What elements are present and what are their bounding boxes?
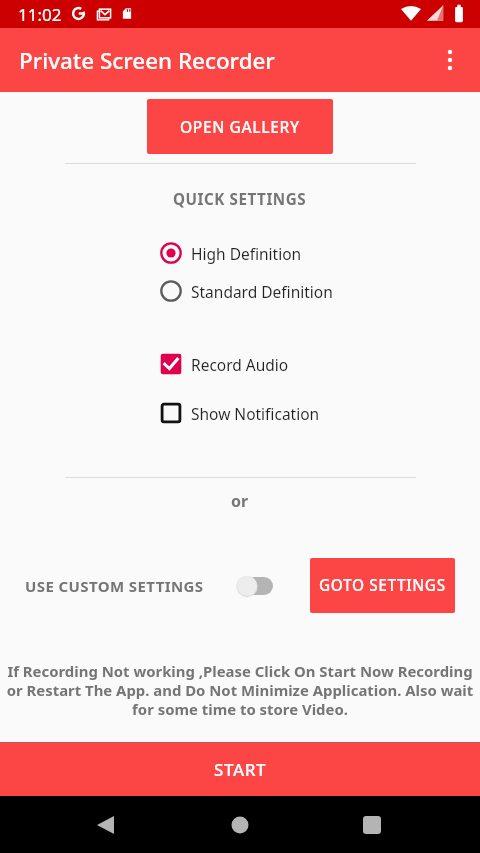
staticText: If Recording Not working ,Please Click O… [2, 661, 478, 720]
button[interactable]: Home [216, 801, 264, 849]
staticText: START [214, 758, 267, 781]
staticText: Show Notification [191, 403, 320, 424]
button[interactable]: Record Audio [0, 353, 480, 375]
staticText: Private Screen Recorder [19, 45, 275, 76]
button[interactable]: USE CUSTOM SETTINGS [25, 576, 204, 596]
staticText: Standard Definition [191, 281, 333, 302]
button[interactable]: Use custom settings toggle [237, 573, 275, 599]
button[interactable]: START [0, 742, 480, 796]
button[interactable]: High Definition [0, 242, 480, 264]
staticText: or [231, 490, 249, 512]
staticText: High Definition [191, 243, 302, 264]
button[interactable]: Show Notification [0, 402, 480, 424]
button[interactable]: OPEN GALLERY [147, 99, 333, 154]
staticText: Record Audio [191, 354, 289, 375]
button[interactable]: Back [84, 801, 132, 849]
staticText: OPEN GALLERY [180, 116, 300, 137]
staticText: QUICK SETTINGS [173, 189, 307, 210]
button[interactable]: Standard Definition [0, 280, 480, 302]
staticText: 11:02 [18, 3, 62, 26]
staticText: GOTO SETTINGS [319, 575, 446, 596]
button[interactable]: GOTO SETTINGS [310, 558, 455, 613]
button[interactable]: More options [430, 40, 470, 80]
button[interactable]: Recent apps [348, 801, 396, 849]
